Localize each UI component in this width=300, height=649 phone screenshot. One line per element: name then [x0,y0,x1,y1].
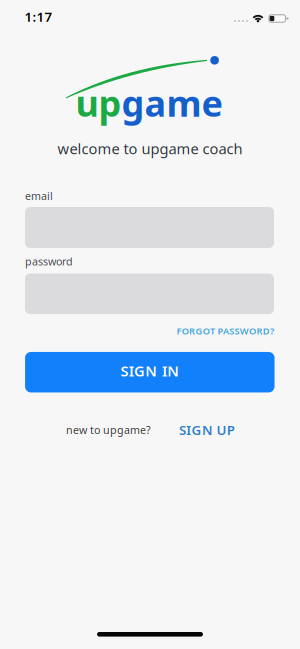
staticText: password [25,254,73,268]
staticText: email [25,189,53,203]
staticText: FORGOT PASSWORD? [176,325,274,337]
button[interactable]: SIGN UP [179,421,235,439]
staticText: up [75,79,121,127]
button[interactable]: FORGOT PASSWORD? [176,325,274,337]
staticText: SIGN IN [120,361,179,381]
staticText: 1:17 [24,8,52,25]
button[interactable]: SIGN IN [25,352,275,392]
staticText: game [121,79,222,127]
staticText: SIGN UP [179,421,235,439]
staticText: new to upgame? [66,423,151,437]
staticText: welcome to upgame coach [57,139,242,158]
